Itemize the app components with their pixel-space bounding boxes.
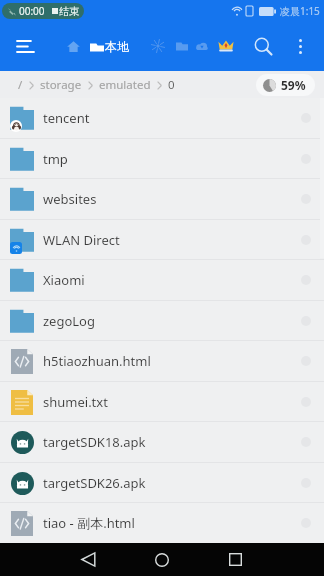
- button[interactable]: websites: [0, 179, 324, 219]
- staticText: storage: [40, 77, 82, 93]
- staticText: targetSDK26.apk: [43, 474, 146, 492]
- staticText: emulated: [99, 77, 151, 93]
- button[interactable]: tiao - 副本.html: [0, 503, 324, 543]
- staticText: tmp: [43, 150, 68, 168]
- staticText: tiao - 副本.html: [43, 514, 135, 532]
- button[interactable]: Search: [245, 28, 281, 64]
- staticText: 0: [168, 77, 175, 93]
- button[interactable]: Folder: [172, 36, 192, 56]
- button[interactable]: 本地: [89, 33, 130, 60]
- button[interactable]: Network: [147, 35, 169, 57]
- button[interactable]: Recents: [217, 543, 253, 576]
- button[interactable]: targetSDK26.apk: [0, 463, 324, 503]
- staticText: Xiaomi: [43, 271, 85, 289]
- button[interactable]: More options: [282, 28, 318, 64]
- staticText: 凌晨1:15: [280, 4, 320, 18]
- staticText: targetSDK18.apk: [43, 433, 146, 451]
- button[interactable]: Cloud: [192, 36, 212, 56]
- button[interactable]: shumei.txt: [0, 382, 324, 422]
- staticText: shumei.txt: [43, 393, 108, 411]
- staticText: websites: [43, 190, 97, 208]
- button[interactable]: Premium: [216, 36, 236, 56]
- button[interactable]: Back: [70, 543, 106, 576]
- button[interactable]: Xiaomi: [0, 260, 324, 300]
- staticText: 本地: [105, 39, 129, 54]
- staticText: WLAN Direct: [43, 231, 120, 249]
- staticText: 结束: [59, 5, 79, 18]
- button[interactable]: Menu: [5, 26, 45, 66]
- button[interactable]: WLAN Direct: [0, 220, 324, 260]
- button[interactable]: targetSDK18.apk: [0, 422, 324, 462]
- button[interactable]: zegoLog: [0, 301, 324, 341]
- staticText: /: [18, 77, 23, 93]
- button[interactable]: Home: [144, 543, 180, 576]
- button[interactable]: tencent: [0, 98, 324, 138]
- button[interactable]: 59%: [256, 74, 315, 96]
- staticText: tencent: [43, 109, 90, 127]
- button[interactable]: Home: [62, 35, 84, 57]
- button[interactable]: h5tiaozhuan.html: [0, 341, 324, 381]
- staticText: h5tiaozhuan.html: [43, 352, 151, 370]
- staticText: 00:00: [19, 4, 45, 18]
- button[interactable]: tmp: [0, 139, 324, 179]
- staticText: 59%: [281, 77, 306, 93]
- staticText: zegoLog: [43, 312, 95, 330]
